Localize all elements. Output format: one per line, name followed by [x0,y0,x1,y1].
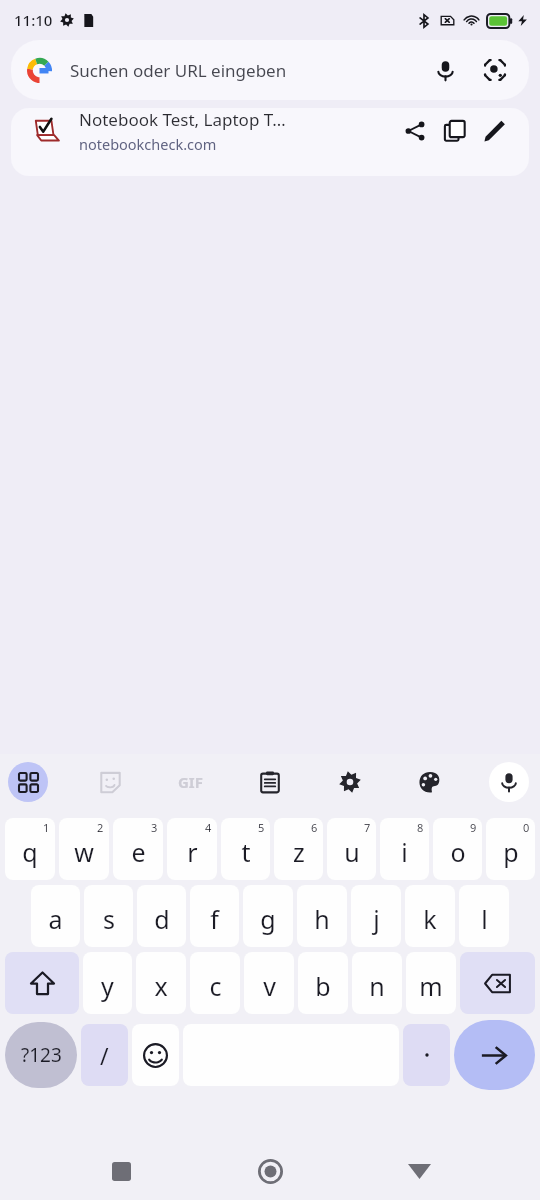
button[interactable]: Settings [330,762,370,802]
button[interactable]: Voice input [489,762,529,802]
staticText: o [450,835,466,869]
staticText: k [423,902,437,936]
button[interactable]: Recent apps [93,1143,149,1199]
staticText: ?123 [21,1042,62,1068]
button[interactable]: Edit [475,111,515,151]
staticText: c [209,969,222,1003]
button[interactable]: f [190,885,239,947]
staticText: z [293,835,305,869]
staticText: m [419,969,443,1003]
staticText: Suchen oder URL eingeben [70,59,287,82]
button[interactable]: Stickers [90,762,130,802]
button[interactable]: r [167,818,217,880]
button[interactable]: ?123 [5,1022,77,1088]
button[interactable]: q [5,818,55,880]
staticText: 0 [523,820,530,835]
button[interactable]: v [244,952,294,1014]
button[interactable]: t [221,818,270,880]
button[interactable]: / [81,1024,128,1086]
staticText: s [103,902,115,936]
button[interactable]: Themes [410,762,450,802]
button[interactable]: Keyboard modes [8,762,48,802]
staticText: f [210,902,219,936]
button[interactable]: m [406,952,456,1014]
button[interactable]: d [137,885,186,947]
button[interactable]: k [405,885,455,947]
button[interactable]: x [136,952,186,1014]
staticText: x [154,969,168,1003]
button[interactable]: p [486,818,535,880]
staticText: 4 [205,820,212,835]
button[interactable]: g [243,885,293,947]
staticText: 1 [43,820,50,835]
button[interactable]: z [274,818,323,880]
button[interactable]: Shift [5,952,79,1014]
staticText: n [369,969,385,1003]
button[interactable]: Google Lens [477,52,513,88]
staticText: d [154,902,170,936]
button[interactable]: c [190,952,240,1014]
button[interactable]: Share [395,111,435,151]
button[interactable]: s [84,885,133,947]
staticText: Notebook Test, Laptop T… [79,108,286,131]
staticText: l [481,902,488,936]
staticText: b [315,969,331,1003]
button[interactable]: l [459,885,509,947]
button[interactable]: h [297,885,347,947]
button[interactable]: i [380,818,429,880]
staticText: v [263,969,276,1003]
button[interactable]: GIF [170,762,210,802]
staticText: e [131,835,146,869]
staticText: q [22,835,38,869]
button[interactable]: b [298,952,348,1014]
button[interactable]: Suchen oder URL eingeben [11,40,529,100]
staticText: notebookcheck.com [79,134,217,154]
staticText: h [314,902,330,936]
button[interactable]: n [352,952,402,1014]
staticText: u [344,835,360,869]
button[interactable]: Notebook Test, Laptop T… [11,108,529,176]
button[interactable]: a [31,885,80,947]
staticText: y [101,969,114,1003]
button[interactable]: Home [242,1143,298,1199]
staticText: / [100,1040,109,1071]
button[interactable]: Enter [454,1020,535,1090]
staticText: i [401,835,408,869]
staticText: r [187,835,198,869]
staticText: t [241,835,251,869]
button[interactable]: Copy link [435,111,475,151]
staticText: 2 [97,820,104,835]
staticText: GIF [178,772,203,792]
staticText: j [373,902,380,936]
button[interactable]: y [83,952,132,1014]
staticText: 6 [311,820,318,835]
button[interactable]: u [327,818,376,880]
staticText: 7 [364,820,371,835]
staticText: 9 [470,820,477,835]
staticText: 5 [258,820,265,835]
button[interactable]: e [113,818,163,880]
staticText: 3 [151,820,158,835]
button[interactable]: Voice search [427,52,463,88]
staticText: a [48,902,63,936]
button[interactable]: o [433,818,482,880]
button[interactable]: Hide keyboard [391,1143,447,1199]
staticText: 8 [417,820,424,835]
button[interactable]: Clipboard [250,762,290,802]
button[interactable]: Emoji [132,1024,179,1086]
staticText: p [503,835,519,869]
button[interactable]: Backspace [460,952,535,1014]
button[interactable]: w [59,818,109,880]
staticText: 11:10 [14,10,53,30]
staticText: g [260,902,276,936]
button[interactable] [403,1024,450,1086]
staticText: w [74,835,94,869]
button[interactable]: j [351,885,401,947]
